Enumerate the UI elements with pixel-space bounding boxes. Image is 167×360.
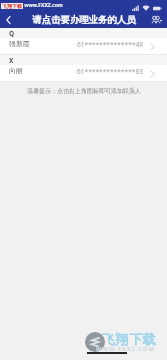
staticText: 飞翔下载 <box>102 331 157 347</box>
staticText: X <box>9 56 14 65</box>
staticText: www.FXXZ.com <box>23 2 63 9</box>
staticText: 请点击要办理业务的人员 <box>32 14 136 26</box>
staticText: 飞翔下载 <box>2 3 22 9</box>
staticText: 向丽 <box>9 66 23 75</box>
button[interactable]: 强新霞 <box>0 38 167 55</box>
staticText: 强新霞 <box>9 39 30 48</box>
staticText: 温馨提示：点击右上角图标即可添加联系人 <box>27 87 141 95</box>
staticText: WWW.FXXZ.COM <box>96 345 155 353</box>
button[interactable]: Add contact <box>147 11 167 28</box>
staticText: Q <box>9 29 15 38</box>
staticText: 61**************4X <box>77 40 144 49</box>
button[interactable]: Back <box>0 11 17 28</box>
staticText: 61**************83 <box>77 67 143 76</box>
button[interactable]: 向丽 <box>0 65 167 82</box>
